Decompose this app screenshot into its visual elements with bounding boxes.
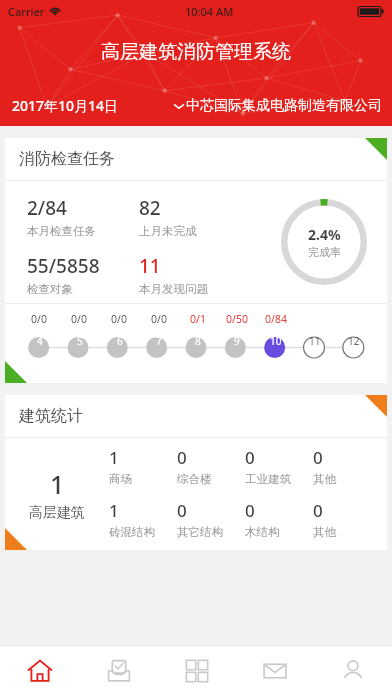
staticText: 0/84 (265, 312, 287, 326)
staticText: 11 (139, 253, 161, 279)
staticText: 木结构 (245, 525, 280, 539)
staticText: 砖混结构 (109, 525, 155, 539)
button[interactable]: 消防检查任务 (5, 138, 387, 383)
staticText: 上月未完成 (139, 224, 197, 238)
staticText: 0 (177, 499, 187, 522)
staticText: 82 (139, 195, 161, 221)
button[interactable]: Home (0, 645, 79, 696)
button[interactable]: 9 (226, 330, 247, 351)
staticText: 建筑统计 (19, 406, 83, 426)
button[interactable]: 中芯国际集成电路制造有限公司 (174, 97, 382, 115)
staticText: 1 (109, 446, 119, 469)
button[interactable]: 8 (187, 330, 208, 351)
staticText: 工业建筑 (245, 472, 291, 486)
staticText: 完成率 (308, 245, 341, 259)
staticText: Carrier (8, 4, 45, 19)
staticText: 综合楼 (177, 472, 212, 486)
staticText: 55/5858 (27, 253, 100, 279)
button[interactable]: Apps (158, 645, 236, 696)
staticText: 0 (177, 446, 187, 469)
staticText: 0/1 (190, 312, 206, 326)
button[interactable]: 4 (29, 330, 50, 351)
staticText: 0/0 (31, 312, 47, 326)
staticText: 2/84 (27, 195, 67, 221)
staticText: 2017年10月14日 (12, 96, 119, 115)
staticText: 高层建筑消防管理系统 (101, 40, 291, 64)
button[interactable]: 11 (304, 330, 325, 351)
staticText: 0/50 (226, 312, 248, 326)
button[interactable]: 5 (69, 330, 90, 351)
button[interactable]: 6 (109, 330, 130, 351)
staticText: 0/0 (71, 312, 87, 326)
staticText: 其他 (313, 525, 336, 539)
staticText: 其他 (313, 472, 336, 486)
staticText: 0 (313, 499, 323, 522)
staticText: 7 (156, 334, 162, 348)
staticText: 6 (117, 334, 123, 348)
staticText: 本月检查任务 (27, 224, 96, 238)
staticText: 8 (195, 334, 201, 348)
button[interactable]: 10 (265, 330, 286, 351)
button[interactable]: 7 (148, 330, 169, 351)
staticText: 0/0 (111, 312, 127, 326)
staticText: 1 (50, 467, 65, 501)
staticText: 5 (77, 334, 83, 348)
staticText: 中芯国际集成电路制造有限公司 (186, 97, 382, 115)
button[interactable]: Profile (314, 645, 392, 696)
staticText: 4 (37, 334, 43, 348)
staticText: 0/0 (151, 312, 167, 326)
staticText: 1 (109, 499, 119, 522)
staticText: 0 (313, 446, 323, 469)
staticText: 10:04 AM (185, 4, 234, 19)
staticText: 12 (348, 334, 360, 348)
button[interactable]: 12 (343, 330, 364, 351)
staticText: 消防检查任务 (19, 149, 115, 169)
staticText: 商场 (109, 472, 132, 486)
staticText: 本月发现问题 (139, 282, 208, 296)
button[interactable]: Messages (236, 645, 314, 696)
staticText: 10 (270, 334, 282, 348)
button[interactable]: 建筑统计 (5, 395, 387, 550)
staticText: 11 (309, 334, 321, 348)
staticText: 0 (245, 446, 255, 469)
staticText: 检查对象 (27, 282, 73, 296)
staticText: 0 (245, 499, 255, 522)
button[interactable]: Tasks (79, 645, 158, 696)
staticText: 2.4% (308, 225, 341, 244)
staticText: 高层建筑 (29, 504, 85, 522)
staticText: 其它结构 (177, 525, 223, 539)
staticText: 9 (234, 334, 240, 348)
